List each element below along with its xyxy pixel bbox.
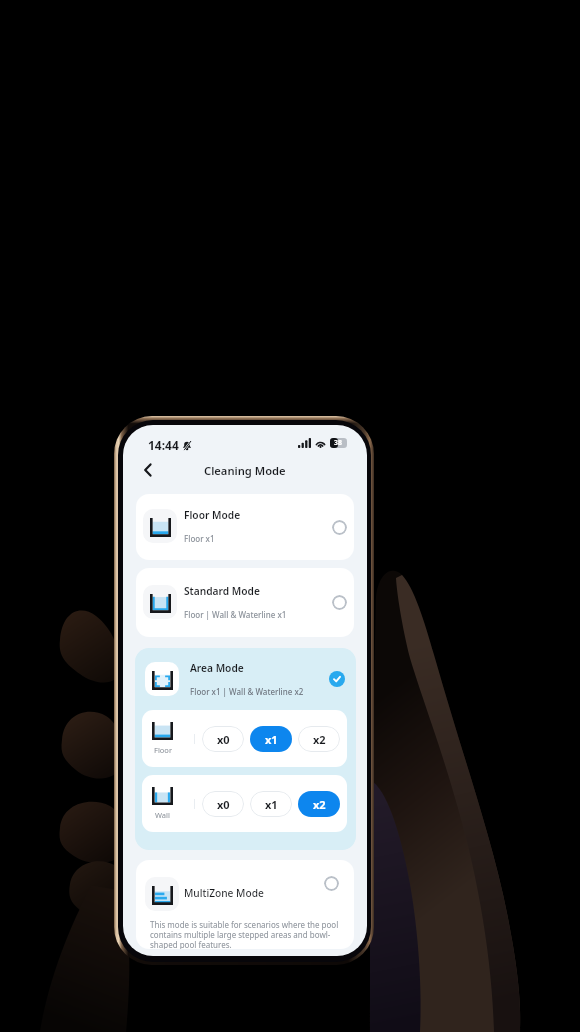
button[interactable]: Floor Mode [136,494,354,560]
staticText: Area Mode [190,661,244,675]
button[interactable]: x2 [298,791,340,817]
button[interactable]: Area Mode [135,648,356,710]
staticText: 38 [334,438,343,448]
button[interactable]: x2 [298,726,340,752]
button[interactable]: x0 [202,726,244,752]
button[interactable]: MultiZone Mode [136,860,354,949]
staticText: x2 [313,732,326,747]
staticText: MultiZone Mode [184,886,264,900]
staticText: Cleaning Mode [204,463,286,478]
staticText: Wall [155,810,170,820]
staticText: Floor x1 | Wall & Waterline x2 [190,686,304,697]
staticText: Floor Mode [184,508,241,522]
staticText: Floor x1 [184,533,215,544]
staticText: This mode is suitable for scenarios wher… [150,919,340,949]
staticText: Floor [154,745,172,755]
button[interactable]: Standard Mode [136,568,354,637]
staticText: Floor | Wall & Waterline x1 [184,609,287,620]
staticText: x0 [217,732,230,747]
staticText: x2 [313,797,326,812]
button[interactable]: Back [130,452,166,488]
staticText: x0 [217,797,230,812]
staticText: x1 [265,732,278,747]
staticText: 14:44 [148,437,179,453]
staticText: x1 [265,797,278,812]
button[interactable]: x0 [202,791,244,817]
button[interactable]: x1 [250,726,292,752]
button[interactable]: x1 [250,791,292,817]
staticText: Standard Mode [184,584,260,598]
